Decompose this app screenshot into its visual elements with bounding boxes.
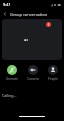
staticText: Camera bbox=[27, 77, 39, 81]
staticText: People bbox=[48, 77, 58, 81]
staticText: Group conversation bbox=[10, 12, 48, 17]
button[interactable]: Camera bbox=[24, 65, 41, 81]
button[interactable]: Unmute bbox=[3, 65, 20, 81]
button[interactable]: Back bbox=[0, 9, 10, 19]
button[interactable]: Calling... bbox=[2, 93, 17, 98]
button[interactable]: People bbox=[44, 65, 61, 81]
staticText: Unmute bbox=[6, 77, 18, 81]
button[interactable]: Recording bbox=[46, 22, 51, 27]
staticText: 9:41 bbox=[3, 2, 11, 7]
